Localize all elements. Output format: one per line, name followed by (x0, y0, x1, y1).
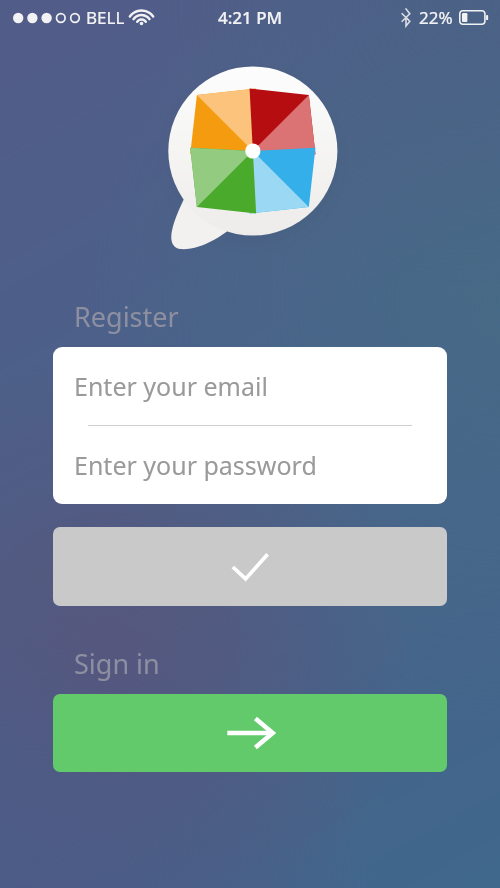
button[interactable]: Enter your password (53, 426, 447, 504)
staticText: Register (74, 298, 179, 335)
staticText: Enter your email (74, 369, 268, 403)
button[interactable]: Sign in (53, 694, 447, 772)
staticText: 4:21 PM (218, 6, 283, 29)
button[interactable]: Confirm registration (53, 527, 447, 606)
staticText: 22% (419, 6, 453, 29)
staticText: Enter your password (74, 448, 317, 482)
staticText: BELL (86, 6, 125, 29)
staticText: Sign in (74, 645, 160, 682)
button[interactable]: Enter your email (53, 347, 447, 425)
